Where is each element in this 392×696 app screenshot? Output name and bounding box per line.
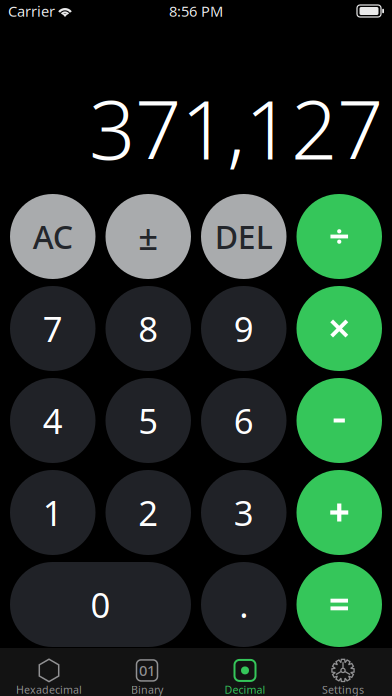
staticText: 8:56 PM	[169, 1, 223, 21]
button[interactable]: 9	[201, 286, 286, 371]
staticText: Binary	[131, 682, 163, 696]
button[interactable]: 1	[10, 470, 95, 555]
staticText: 7	[43, 305, 63, 351]
staticText: Carrier	[8, 1, 55, 21]
staticText: 371,127	[89, 74, 383, 182]
staticText: 2	[138, 489, 158, 535]
staticText: Settings	[322, 682, 364, 696]
staticText: 8	[138, 305, 158, 351]
staticText: 01	[139, 661, 155, 680]
staticText: 4	[43, 397, 63, 443]
button[interactable]: DEL	[201, 194, 286, 279]
staticText: Decimal	[224, 682, 265, 696]
button[interactable]: Plus	[296, 470, 382, 555]
button[interactable]: 7	[10, 286, 95, 371]
button[interactable]: AC	[10, 194, 95, 279]
staticText: DEL	[215, 215, 273, 258]
button[interactable]: .	[201, 562, 286, 647]
staticText: 3	[234, 489, 254, 535]
button[interactable]: 0	[10, 562, 191, 647]
button[interactable]: Settings	[294, 648, 392, 696]
button[interactable]: 6	[201, 378, 286, 463]
staticText: 5	[138, 397, 158, 443]
button[interactable]: 3	[201, 470, 286, 555]
button[interactable]: 8	[105, 286, 191, 371]
button[interactable]: Minus	[296, 378, 382, 463]
button[interactable]: Decimal	[196, 648, 294, 696]
staticText: .	[239, 581, 248, 627]
button[interactable]: Multiply	[296, 286, 382, 371]
button[interactable]: ±	[105, 194, 191, 279]
staticText: 6	[234, 397, 254, 443]
staticText: AC	[33, 215, 73, 258]
button[interactable]: Equals	[296, 562, 382, 647]
button[interactable]: 5	[105, 378, 191, 463]
staticText: ±	[138, 213, 158, 259]
button[interactable]: 2	[105, 470, 191, 555]
staticText: 0	[90, 581, 110, 627]
staticText: 9	[234, 305, 254, 351]
button[interactable]: Divide	[296, 194, 382, 279]
staticText: 1	[43, 489, 63, 535]
button[interactable]: 4	[10, 378, 95, 463]
staticText: Hexadecimal	[16, 682, 82, 696]
button[interactable]: 01	[98, 648, 196, 696]
button[interactable]: Hexadecimal	[0, 648, 98, 696]
